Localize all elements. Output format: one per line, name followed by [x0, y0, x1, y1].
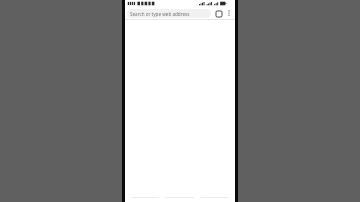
button[interactable]: More options — [224, 8, 234, 18]
button[interactable]: Tab switcher — [213, 8, 224, 19]
staticText: Search or type web address — [130, 11, 190, 17]
button[interactable]: Search or type web address — [127, 9, 211, 18]
